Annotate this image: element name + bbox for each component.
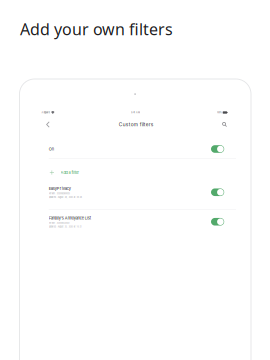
button[interactable]: Fanboy's Annoyance List [33,210,236,233]
staticText: Updated: August 25, 2020 at 16:21 [49,226,82,228]
button[interactable]: Search [217,118,232,131]
staticText: Adguard [41,111,49,114]
staticText: 100% [217,111,222,114]
staticText: Add a filter [60,170,79,175]
button[interactable]: EasyPrivacy [33,181,236,203]
staticText: Fanboy's Annoyance List [49,216,91,220]
staticText: On [49,147,54,151]
staticText: EasyPrivacy [49,186,71,191]
staticText: Version: 2020082520621 [49,222,70,224]
staticText: Custom filters [119,122,154,127]
staticText: 9:41 AM [131,111,140,114]
button[interactable]: On [33,137,236,161]
button[interactable]: Add a filter [33,165,236,179]
button[interactable]: Back [40,118,55,131]
staticText: Add your own filters [20,18,173,40]
staticText: Updated: August 28, 2020 at 09:28 [49,196,82,198]
staticText: Version: 2020082800025 [49,192,70,195]
